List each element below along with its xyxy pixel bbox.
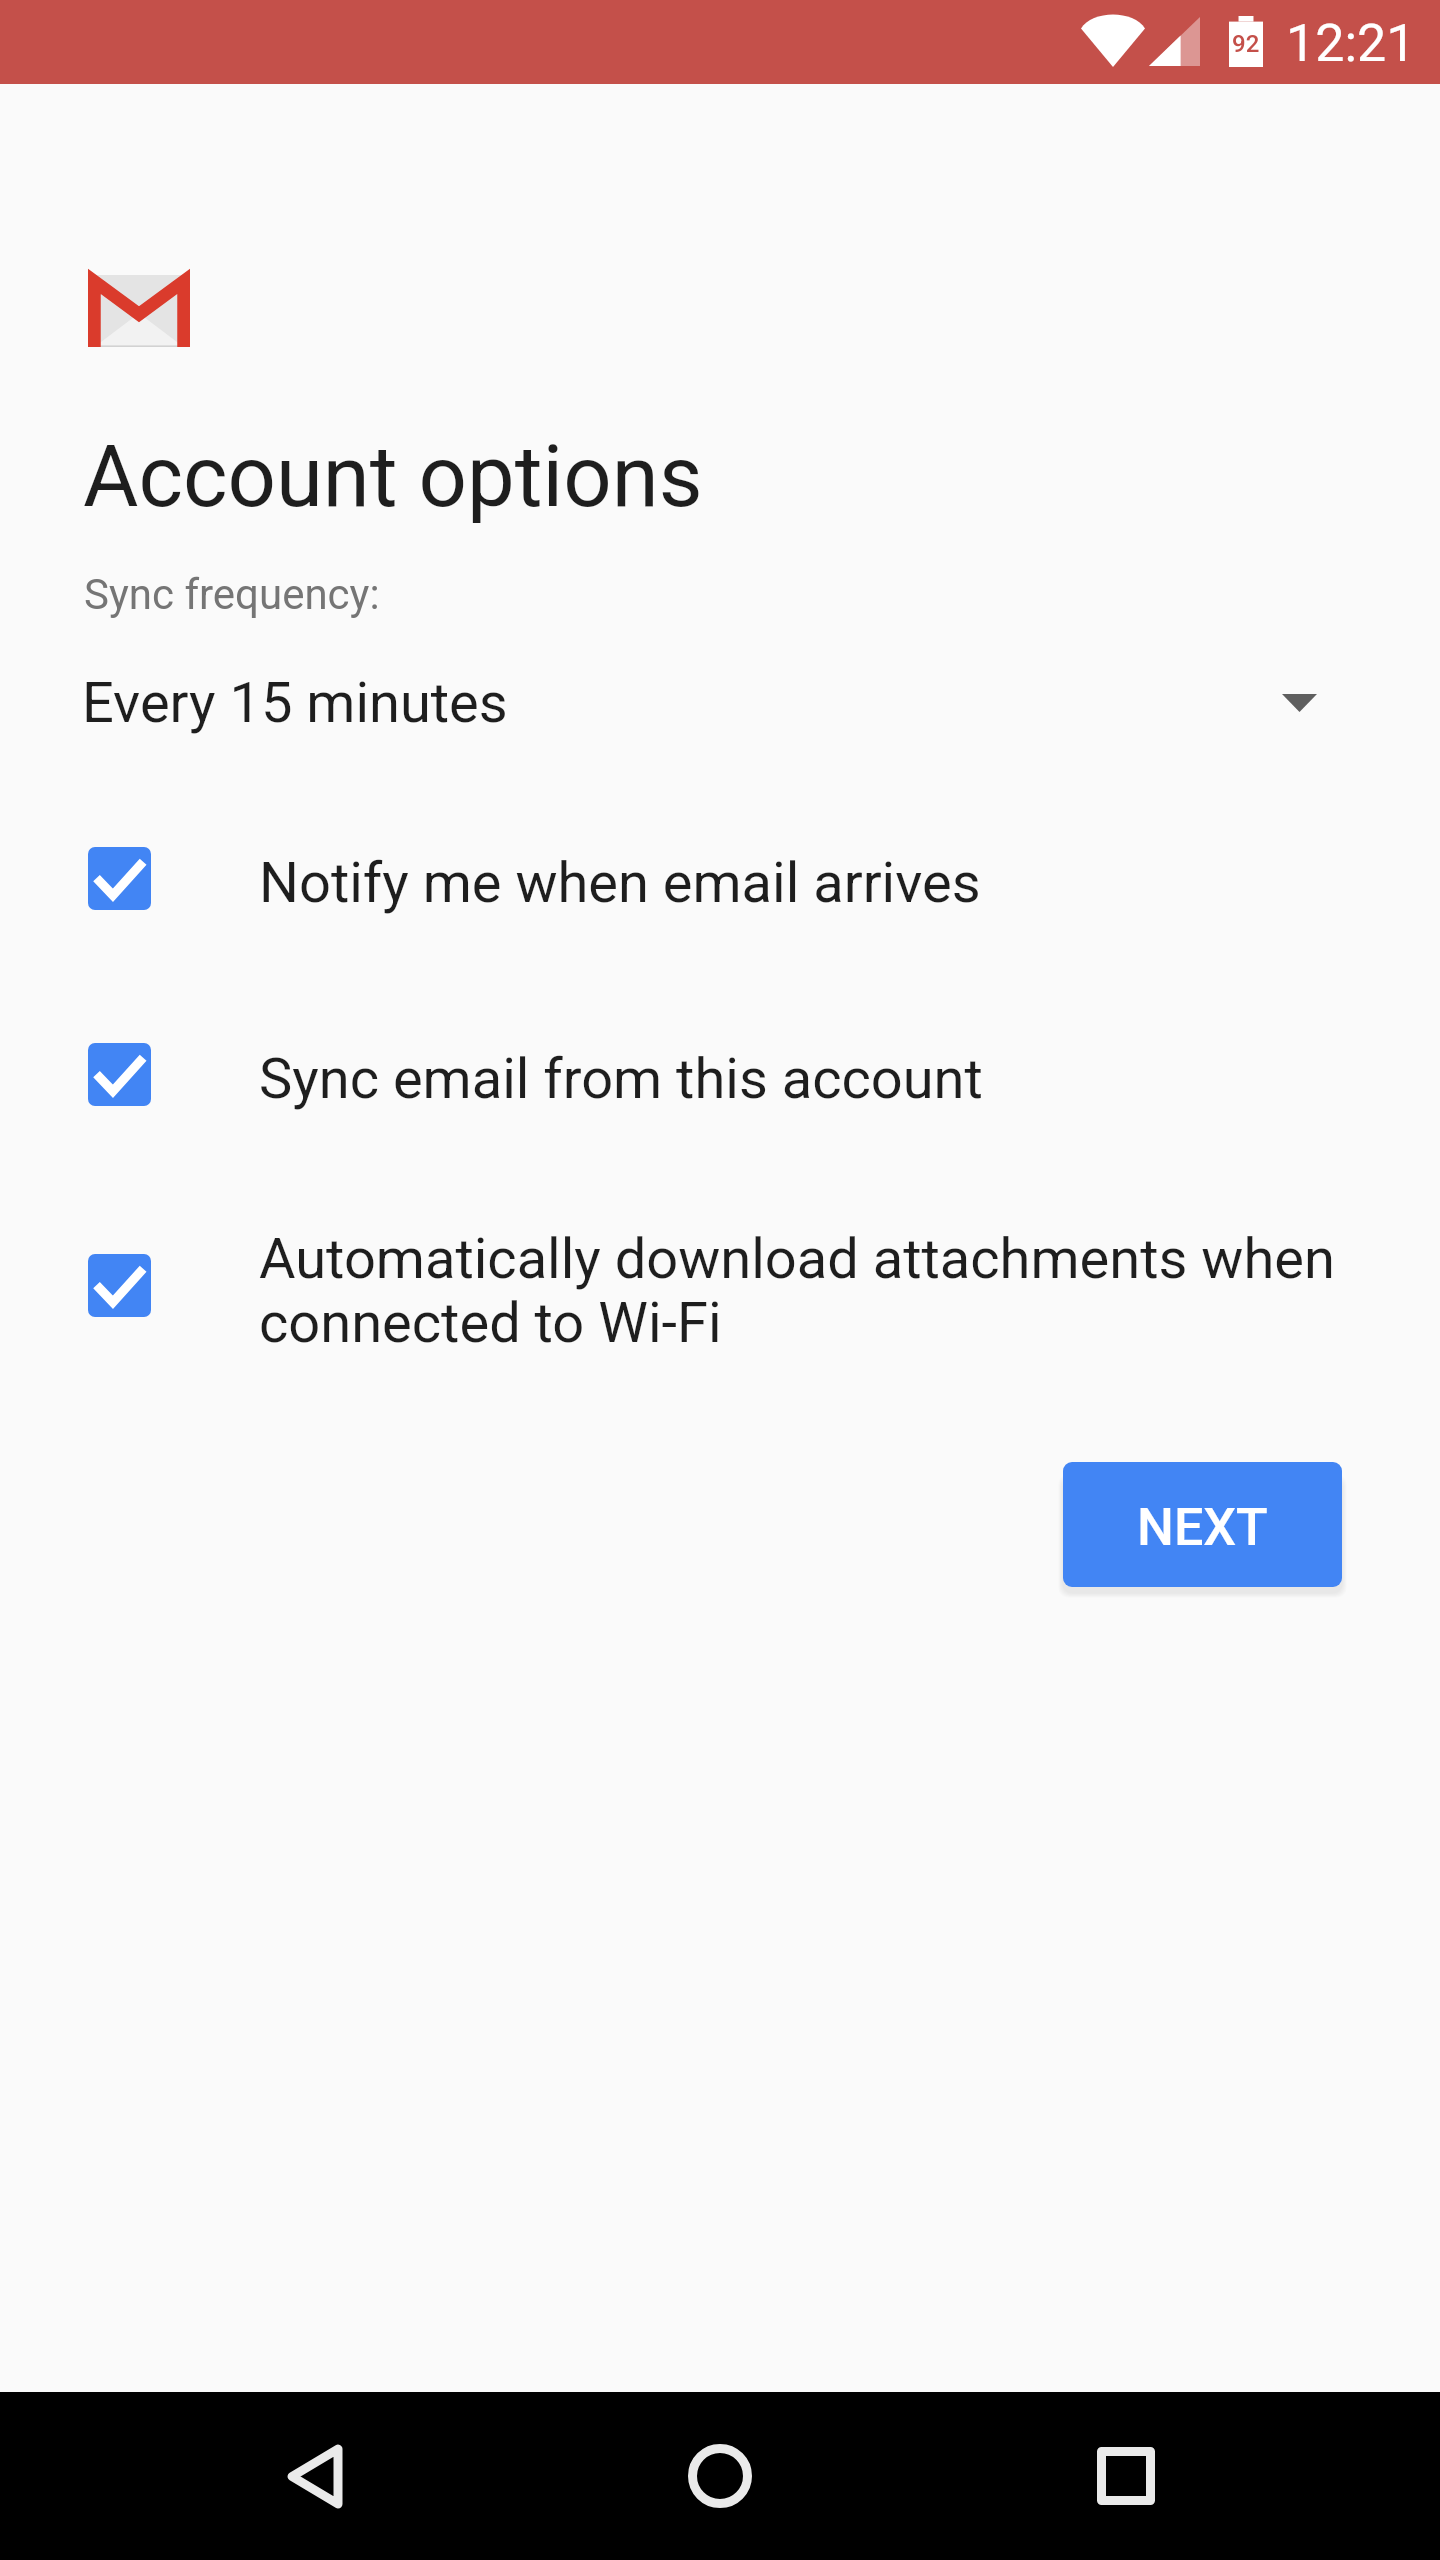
button[interactable]: Home <box>650 2406 790 2546</box>
staticText: Account options <box>83 427 703 527</box>
button[interactable]: Automatically download attachments when … <box>0 1195 1440 1375</box>
staticText: 92 <box>1232 30 1260 58</box>
staticText: 12:21 <box>1286 13 1416 74</box>
staticText: Every 15 minutes <box>82 670 508 736</box>
staticText: Sync frequency: <box>84 570 380 619</box>
button[interactable]: Back <box>245 2406 385 2546</box>
staticText: Sync email from this account <box>259 1046 983 1112</box>
button[interactable]: NEXT <box>1063 1462 1342 1587</box>
staticText: Notify me when email arrives <box>259 850 981 916</box>
staticText: Automatically download attachments when … <box>259 1226 1335 1355</box>
staticText: NEXT <box>1137 1497 1268 1558</box>
button[interactable]: Notify me when email arrives <box>0 808 1440 948</box>
button[interactable]: Every 15 minutes <box>0 648 1440 758</box>
button[interactable]: Sync email from this account <box>0 1004 1440 1144</box>
button[interactable]: Recent apps <box>1056 2406 1196 2546</box>
